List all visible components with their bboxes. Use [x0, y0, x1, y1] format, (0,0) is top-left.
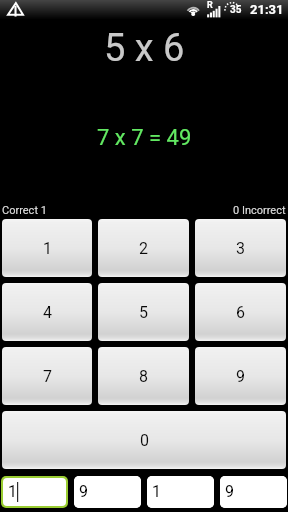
button[interactable]: 8 [98, 347, 189, 405]
staticText: 9 [225, 482, 234, 501]
staticText: 0 [140, 431, 149, 450]
staticText: 5 x 6 [104, 26, 185, 71]
button[interactable]: 6 [195, 283, 286, 341]
button[interactable]: 1 [3, 478, 66, 506]
staticText: 21:31 [250, 2, 284, 17]
button[interactable]: 5 [98, 283, 189, 341]
staticText: 6 [236, 303, 245, 322]
staticText: 4 [43, 303, 52, 322]
staticText: 1 [152, 482, 161, 501]
staticText: 7 x 7 = 49 [97, 125, 192, 151]
staticText: 5 [139, 303, 148, 322]
button[interactable]: 2 [98, 219, 189, 277]
staticText: R [207, 0, 213, 11]
staticText: 9 [236, 367, 245, 386]
staticText: 1 [43, 239, 52, 258]
staticText: 0 Incorrect [233, 204, 286, 217]
staticText: 1 [8, 482, 17, 501]
button[interactable]: 1 [147, 476, 214, 508]
button[interactable]: 9 [220, 476, 287, 508]
staticText: 9 [79, 482, 88, 501]
button[interactable]: 9 [74, 476, 141, 508]
other: Warning [7, 2, 24, 18]
staticText: 3 [236, 239, 245, 258]
staticText: 35 [230, 4, 242, 16]
button[interactable]: 0 [2, 411, 286, 469]
staticText: Correct 1 [2, 204, 47, 217]
staticText: 8 [139, 367, 148, 386]
button[interactable]: 9 [195, 347, 286, 405]
staticText: 7 [43, 367, 52, 386]
button[interactable]: 1 [2, 219, 92, 277]
button[interactable]: 4 [2, 283, 92, 341]
staticText: 2 [139, 239, 148, 258]
button[interactable]: 3 [195, 219, 286, 277]
button[interactable]: 7 [2, 347, 92, 405]
